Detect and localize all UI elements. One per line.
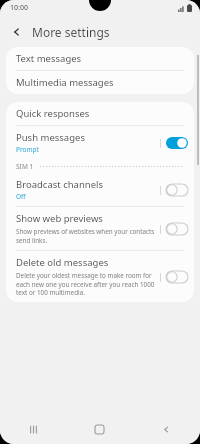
- staticText: Delete your oldest message to make room …: [16, 271, 156, 297]
- staticText: 10:00: [10, 3, 28, 13]
- staticText: Multimedia messages: [16, 76, 114, 89]
- staticText: Push messages: [16, 131, 85, 144]
- button[interactable]: Delete old messages: [160, 267, 188, 287]
- button[interactable]: Push messages: [160, 133, 188, 153]
- button[interactable]: Back: [6, 21, 28, 43]
- staticText: Text messages: [16, 52, 82, 65]
- staticText: Broadcast channels: [16, 178, 104, 191]
- staticText: Show previews of websites when your cont…: [16, 227, 156, 245]
- button[interactable]: Multimedia messages: [6, 71, 194, 94]
- button[interactable]: Home: [66, 414, 133, 444]
- staticText: Prompt: [16, 145, 39, 154]
- button[interactable]: Text messages: [6, 47, 194, 70]
- staticText: More settings: [32, 24, 110, 40]
- button[interactable]: Show web previews: [6, 207, 194, 250]
- button[interactable]: Broadcast channels: [6, 173, 194, 206]
- staticText: Delete old messages: [16, 256, 109, 269]
- button[interactable]: Quick responses: [6, 102, 194, 125]
- staticText: SIM 1: [16, 162, 34, 171]
- button[interactable]: Delete old messages: [6, 251, 194, 302]
- button[interactable]: Broadcast channels: [160, 180, 188, 200]
- button[interactable]: Push messages: [6, 126, 194, 159]
- staticText: Show web previews: [16, 212, 103, 225]
- staticText: Off: [16, 192, 26, 201]
- staticText: Quick responses: [16, 107, 90, 120]
- button[interactable]: Back: [133, 414, 200, 444]
- button[interactable]: Recents: [0, 414, 66, 444]
- button[interactable]: Show web previews: [160, 219, 188, 239]
